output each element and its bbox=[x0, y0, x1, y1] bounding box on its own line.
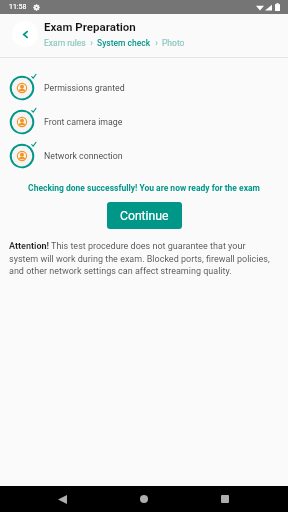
button[interactable]: Back bbox=[49, 486, 75, 512]
staticText: Checking done successfully! You are now … bbox=[0, 183, 288, 193]
staticText: Network connection bbox=[44, 151, 123, 161]
button[interactable]: Home bbox=[131, 486, 157, 512]
button[interactable]: Front camera image bbox=[0, 109, 288, 135]
staticText: › bbox=[86, 38, 97, 48]
button[interactable]: Continue bbox=[107, 202, 182, 229]
button[interactable]: Network connection bbox=[0, 143, 288, 169]
button[interactable]: Permissions granted bbox=[0, 75, 288, 101]
button[interactable]: System check bbox=[97, 38, 151, 48]
staticText: Front camera image bbox=[44, 117, 123, 127]
staticText: Continue bbox=[120, 209, 169, 223]
button[interactable]: Exam rules bbox=[44, 38, 86, 48]
button[interactable]: Back bbox=[12, 21, 38, 47]
staticText: 11:58 bbox=[9, 3, 27, 11]
staticText: › bbox=[151, 38, 162, 48]
staticText: Permissions granted bbox=[44, 83, 125, 93]
staticText: Exam Preparation bbox=[44, 20, 136, 33]
button[interactable]: Recents bbox=[212, 486, 238, 512]
staticText: Attention! This test procedure does not … bbox=[9, 241, 274, 276]
button[interactable]: Photo bbox=[162, 38, 185, 48]
